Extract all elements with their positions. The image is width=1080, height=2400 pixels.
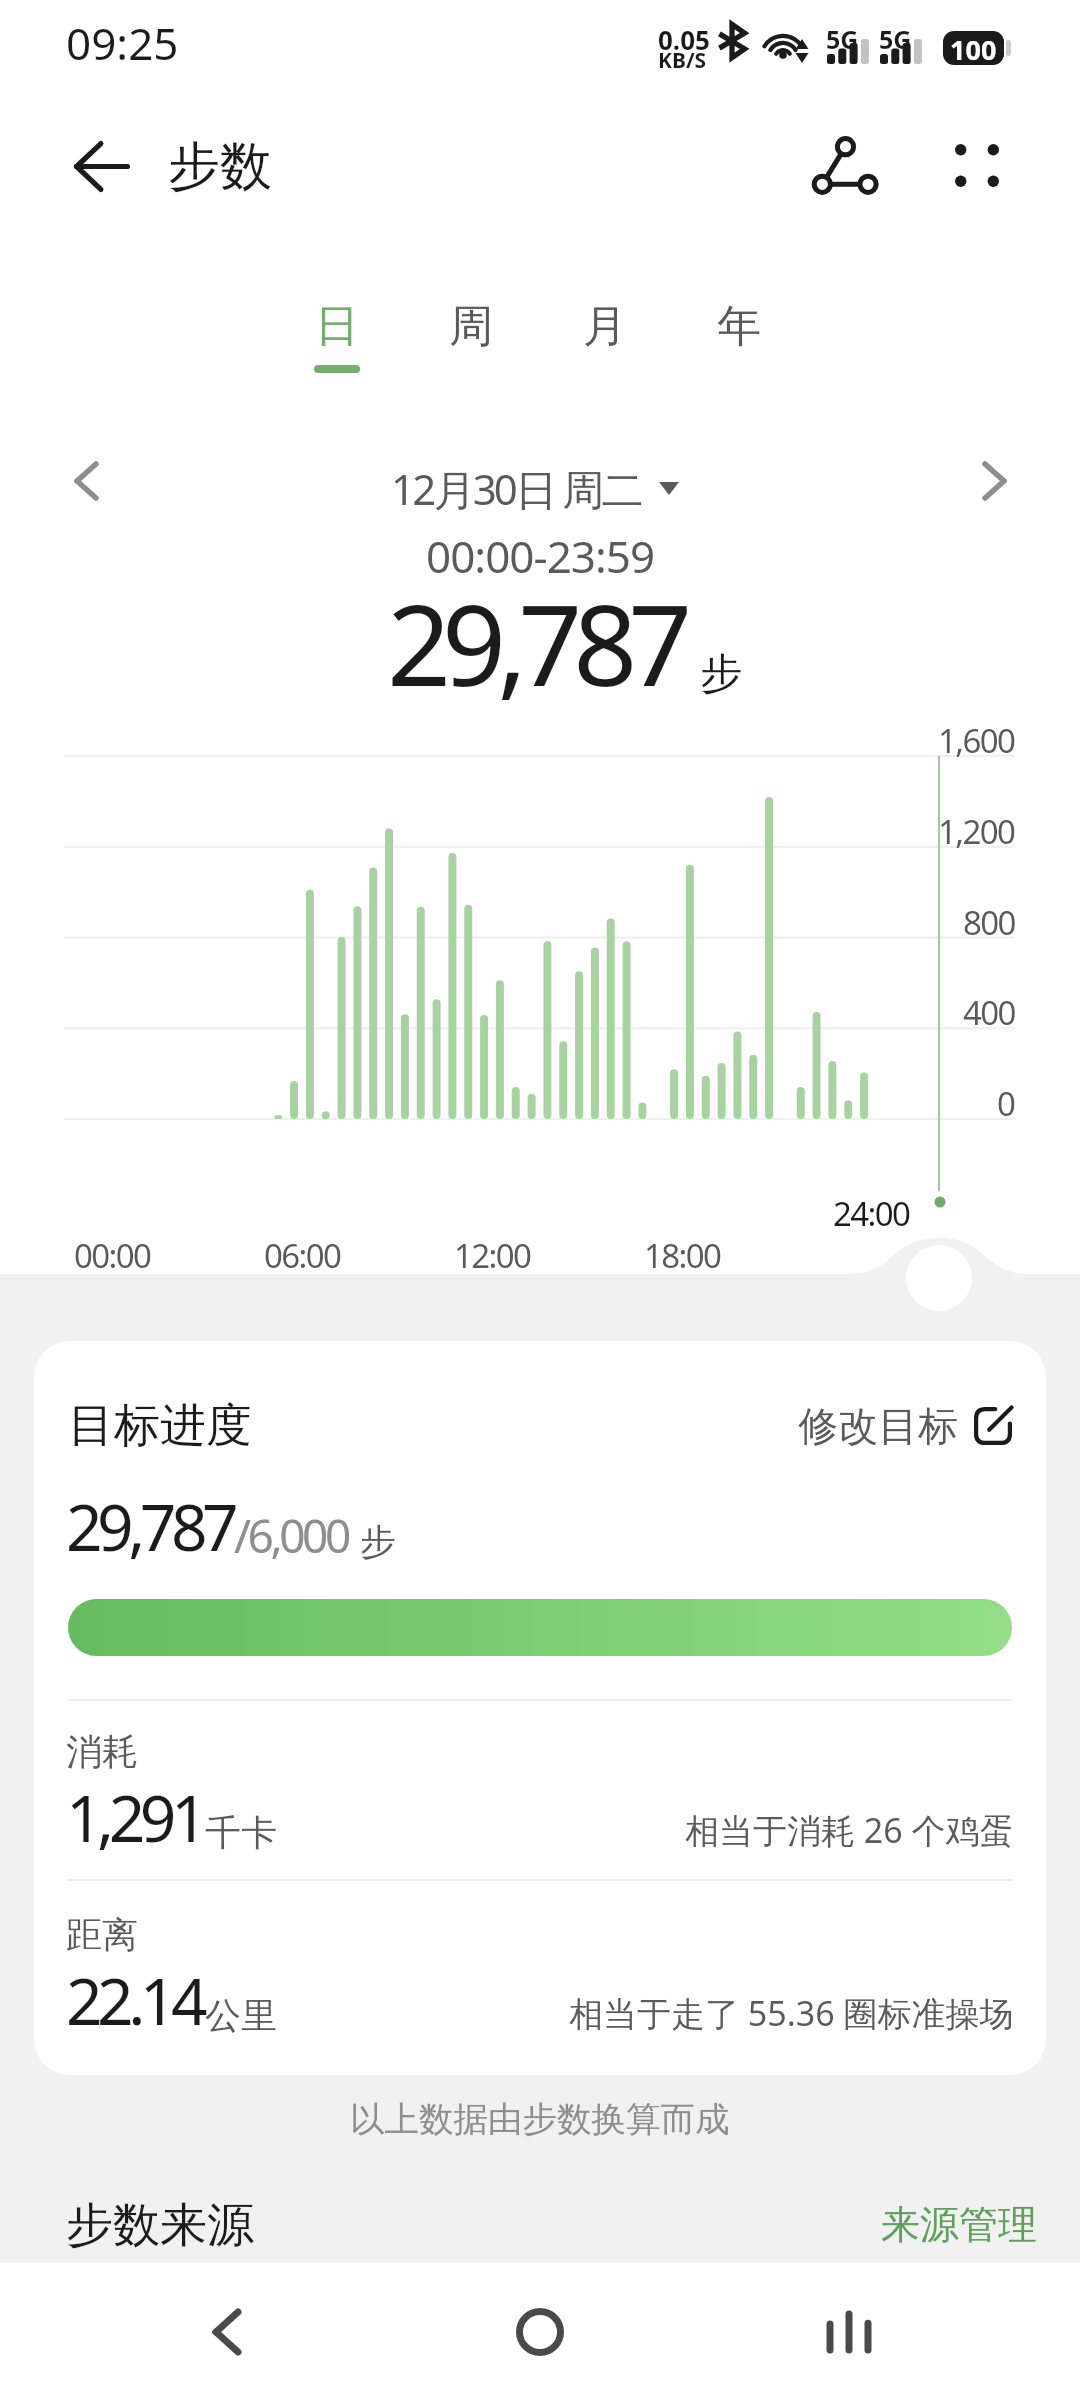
staticText: /6,000 (234, 1504, 348, 1567)
staticText: 1,291 (66, 1774, 203, 1861)
staticText: 800 (963, 900, 1015, 945)
button[interactable]: 日 (275, 299, 399, 399)
staticText: 日 (315, 299, 359, 354)
staticText: 24:00 (833, 1191, 910, 1236)
staticText: 1,600 (938, 718, 1015, 763)
staticText: 周 (449, 299, 493, 354)
staticText: 相当于消耗 26 个鸡蛋 (685, 1807, 1014, 1853)
staticText: 步数来源 (66, 2196, 254, 2255)
button[interactable]: Share (800, 120, 890, 210)
staticText: 12月30日 周二 (391, 460, 641, 517)
button[interactable]: Recent apps (809, 2263, 889, 2400)
button[interactable]: 来源管理 (881, 2200, 1037, 2249)
staticText: 消耗 (66, 1729, 138, 1774)
staticText: 100 (950, 31, 997, 65)
button[interactable]: Home (490, 2263, 590, 2400)
staticText: 00:00-23:59 (426, 526, 655, 586)
staticText: 5G (826, 22, 859, 56)
staticText: 来源管理 (881, 2200, 1037, 2249)
button[interactable]: 12月30日 周二 (391, 460, 679, 517)
button[interactable]: 年 (677, 299, 801, 399)
staticText: 公里 (205, 1993, 277, 2038)
staticText: 修改目标 (798, 1401, 958, 1451)
staticText: 1,200 (938, 809, 1015, 854)
staticText: 22.14 (66, 1957, 203, 2044)
staticText: 29,787 (387, 566, 684, 719)
staticText: 距离 (66, 1912, 138, 1957)
staticText: 目标进度 (68, 1397, 252, 1455)
staticText: 06:00 (264, 1233, 341, 1278)
staticText: KB/S (658, 46, 707, 75)
button[interactable]: Previous day (53, 448, 119, 514)
staticText: 千卡 (205, 1810, 277, 1855)
staticText: 步 (700, 648, 742, 701)
button[interactable]: 月 (543, 299, 667, 399)
staticText: 以上数据由步数换算而成 (350, 2098, 730, 2141)
button[interactable]: More options (932, 120, 1022, 210)
staticText: 12:00 (454, 1233, 531, 1278)
button[interactable]: Back (63, 127, 141, 205)
staticText: 步数 (168, 134, 272, 200)
staticText: 18:00 (644, 1233, 721, 1278)
staticText: 00:00 (74, 1233, 151, 1278)
staticText: 0 (997, 1081, 1015, 1126)
staticText: 400 (963, 990, 1015, 1035)
button[interactable]: 修改目标 (798, 1401, 1012, 1451)
staticText: 5G (879, 22, 912, 56)
staticText: 年 (717, 299, 761, 354)
button[interactable]: Next day (961, 448, 1027, 514)
button[interactable]: 步数来源 (66, 2196, 254, 2255)
staticText: 相当于走了 55.36 圈标准操场 (569, 1990, 1014, 2036)
staticText: 步 (360, 1519, 396, 1564)
button[interactable]: 周 (409, 299, 533, 399)
staticText: 0.05 (658, 22, 710, 57)
staticText: 月 (583, 299, 627, 354)
staticText: 09:25 (66, 13, 179, 73)
button[interactable]: Back (187, 2263, 267, 2400)
staticText: 29,787 (66, 1483, 234, 1570)
